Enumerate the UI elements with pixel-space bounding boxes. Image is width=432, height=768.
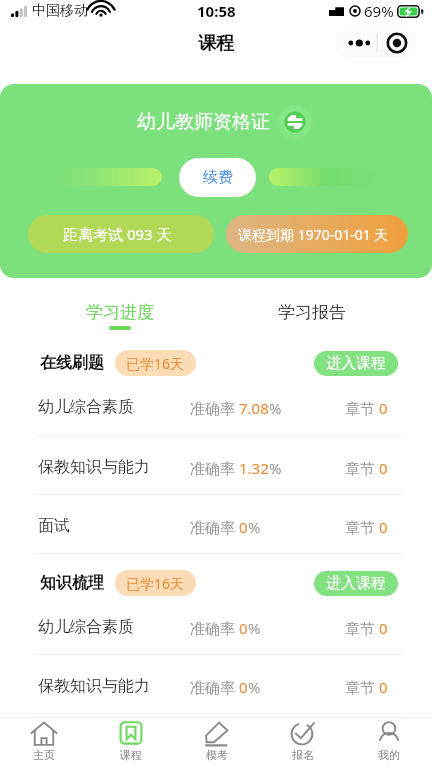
staticText: 在线刷题	[40, 353, 104, 373]
button[interactable]: 保教知识与能力	[0, 655, 432, 713]
button[interactable]: More options	[335, 28, 416, 58]
staticText: 续费	[203, 168, 233, 187]
staticText: 进入课程	[326, 354, 386, 373]
staticText: 幼儿综合素质	[38, 397, 134, 417]
staticText: %	[248, 517, 261, 537]
button[interactable]: Switch course	[277, 104, 313, 140]
staticText: 章节	[345, 398, 379, 418]
staticText: %	[248, 618, 261, 638]
staticText: 0	[379, 398, 388, 418]
staticText: 0	[379, 517, 388, 537]
button[interactable]: 保教知识与能力	[0, 436, 432, 494]
staticText: 章节	[345, 618, 379, 638]
staticText: 课程	[198, 32, 234, 55]
staticText: 幼儿综合素质	[38, 617, 134, 637]
staticText: 幼儿教师资格证	[137, 110, 270, 134]
staticText: 课程到期 1970-01-01 天	[238, 225, 389, 244]
staticText: %	[269, 458, 282, 478]
staticText: 准确率	[190, 618, 239, 638]
staticText: 0	[239, 677, 248, 697]
button[interactable]: 模考	[174, 718, 260, 768]
button[interactable]: 主页	[0, 718, 87, 768]
staticText: 我的	[378, 748, 400, 762]
staticText: %	[248, 677, 261, 697]
staticText: 知识梳理	[40, 573, 104, 593]
staticText: 模考	[206, 748, 228, 762]
staticText: 保教知识与能力	[38, 457, 150, 477]
staticText: 0	[379, 618, 388, 638]
button[interactable]: 进入课程	[314, 351, 398, 376]
button[interactable]: 报名	[260, 718, 346, 768]
staticText: 准确率	[190, 398, 239, 418]
button[interactable]: 进入课程	[314, 571, 398, 596]
staticText: 学习报告	[278, 302, 346, 323]
staticText: 7.08	[239, 398, 269, 418]
button[interactable]: 课程到期 1970-01-01 天	[226, 215, 408, 253]
staticText: 距离考试 093 天	[63, 224, 172, 244]
staticText: 章节	[345, 458, 379, 478]
staticText: 已学16天	[126, 354, 185, 373]
staticText: 课程	[120, 748, 142, 762]
button[interactable]: 距离考试 093 天	[28, 215, 214, 253]
staticText: 面试	[38, 516, 70, 536]
staticText: 学习进度	[86, 302, 154, 323]
button[interactable]: 幼儿综合素质	[0, 376, 432, 435]
staticText: 0	[379, 677, 388, 697]
staticText: 报名	[292, 748, 314, 762]
button[interactable]: 面试	[0, 495, 432, 553]
staticText: 准确率	[190, 677, 239, 697]
button[interactable]: 学习报告	[216, 278, 408, 334]
button[interactable]: 课程	[87, 718, 174, 768]
staticText: 保教知识与能力	[38, 676, 150, 696]
staticText: 0	[239, 618, 248, 638]
staticText: 69%	[364, 1, 394, 21]
staticText: 10:58	[197, 1, 236, 21]
staticText: 0	[239, 517, 248, 537]
staticText: 章节	[345, 517, 379, 537]
staticText: 准确率	[190, 517, 239, 537]
staticText: 章节	[345, 677, 379, 697]
staticText: 0	[379, 458, 388, 478]
staticText: 中国移动	[32, 2, 88, 20]
staticText: 1.32	[239, 458, 269, 478]
staticText: 主页	[33, 748, 55, 762]
button[interactable]: 续费	[179, 158, 256, 197]
button[interactable]: 幼儿综合素质	[0, 596, 432, 654]
staticText: %	[269, 398, 282, 418]
button[interactable]: 我的	[346, 718, 432, 768]
staticText: 准确率	[190, 458, 239, 478]
staticText: 已学16天	[126, 574, 185, 593]
staticText: 进入课程	[326, 574, 386, 593]
button[interactable]: 学习进度	[24, 278, 216, 334]
